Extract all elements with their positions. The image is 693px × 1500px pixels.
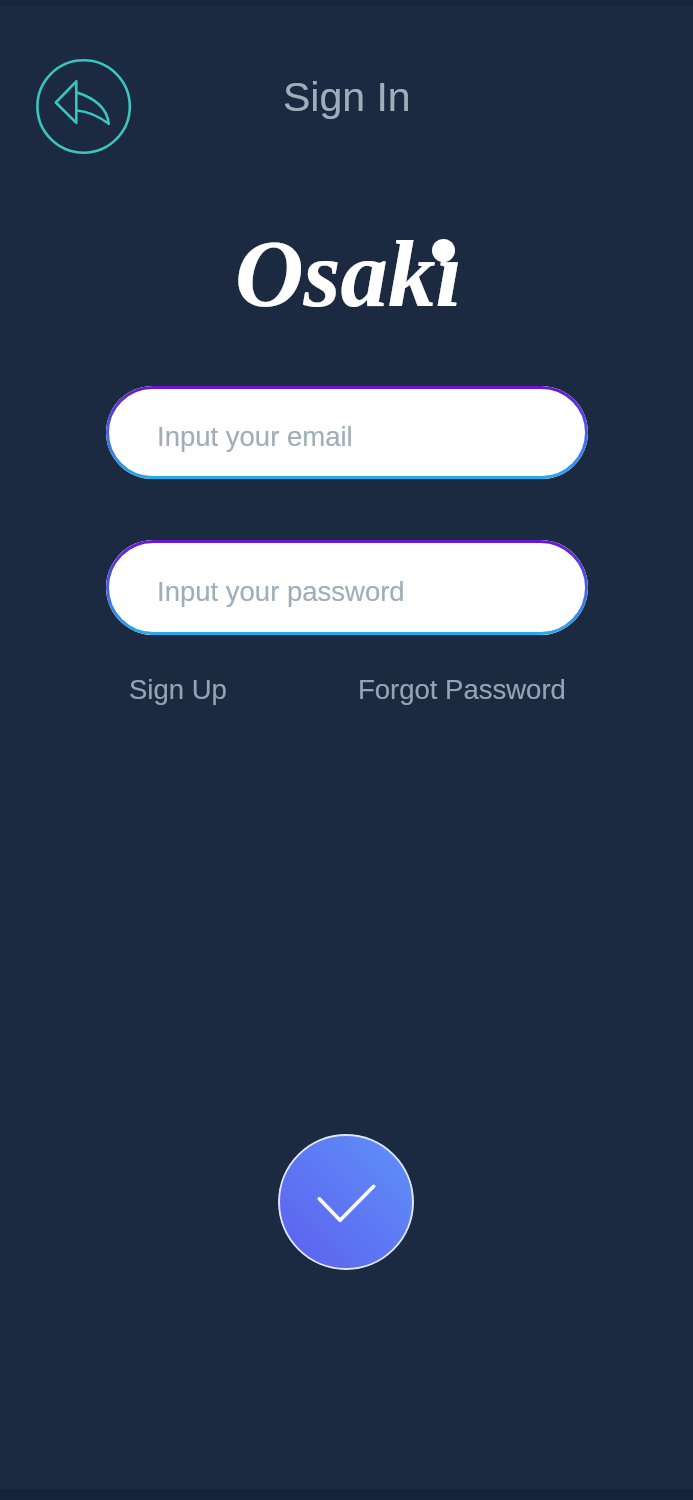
button[interactable]: Sign Up bbox=[115, 660, 241, 719]
button[interactable] bbox=[36, 59, 131, 154]
staticText: Sign Up bbox=[129, 674, 227, 705]
button[interactable]: Input your email bbox=[106, 386, 588, 479]
button[interactable]: Input your password bbox=[106, 540, 588, 635]
button[interactable]: Forgot Password bbox=[344, 660, 580, 719]
staticText: Sign In bbox=[283, 74, 411, 120]
staticText: Input your email bbox=[157, 421, 353, 452]
button[interactable] bbox=[278, 1134, 414, 1270]
staticText: Input your password bbox=[157, 576, 405, 607]
staticText: Forgot Password bbox=[358, 674, 566, 705]
staticText: Osakı bbox=[235, 221, 462, 326]
